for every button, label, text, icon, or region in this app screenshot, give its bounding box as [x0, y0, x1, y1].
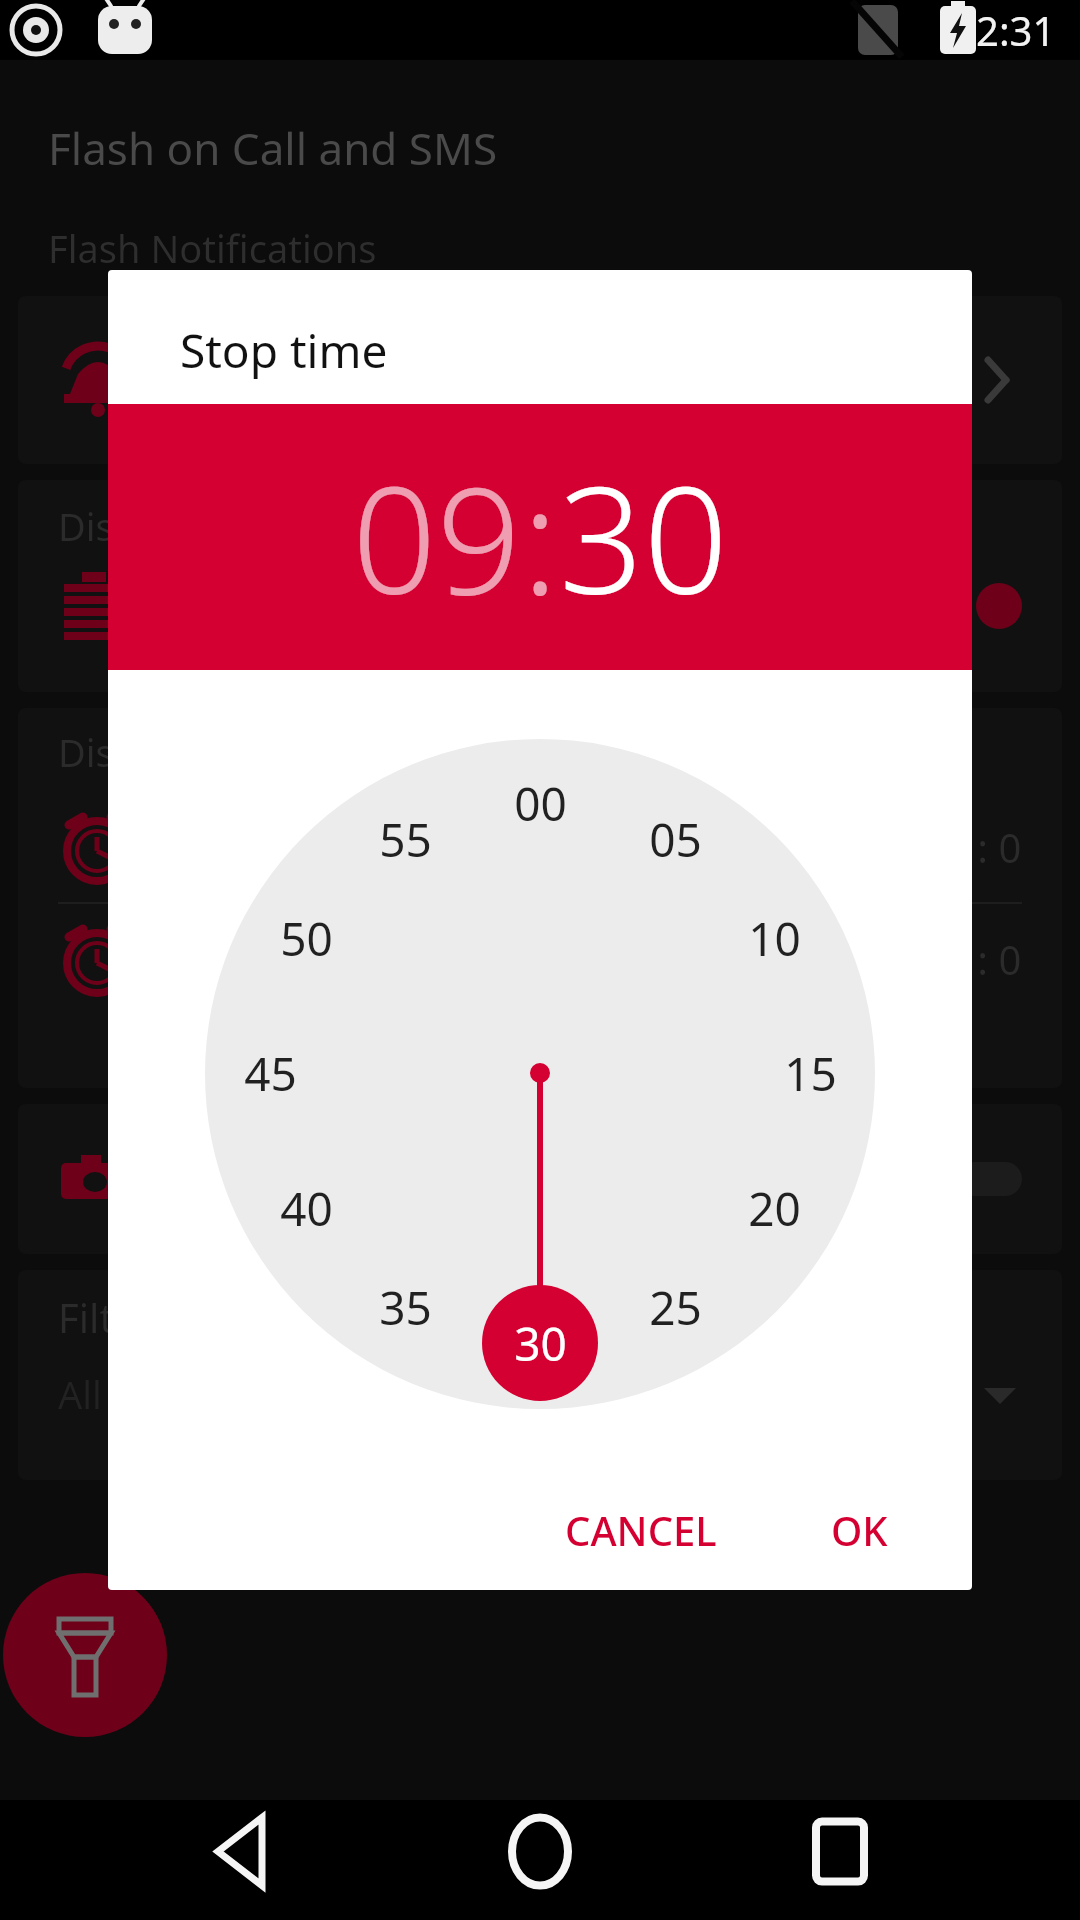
- staticText: OK: [831, 1503, 888, 1557]
- staticText: 0 : 0: [944, 820, 1022, 874]
- staticText: 50: [280, 907, 333, 970]
- staticText: 55: [379, 808, 432, 871]
- staticText: 0 : 0: [944, 932, 1022, 986]
- staticText: Disable when battery low: [58, 500, 509, 552]
- staticText: Filter: [58, 1290, 153, 1344]
- button[interactable]: [18, 1104, 1062, 1254]
- staticText: 40: [280, 1177, 333, 1240]
- staticText: 35: [379, 1276, 432, 1339]
- staticText: Flash Notifications: [48, 222, 377, 274]
- staticText: 00: [514, 772, 567, 835]
- staticText: 15: [784, 1042, 837, 1105]
- staticText: Disable during period: [58, 726, 446, 778]
- button[interactable]: Disable when battery low: [18, 480, 1062, 692]
- staticText: 25: [649, 1276, 702, 1339]
- button[interactable]: OK: [807, 1487, 912, 1573]
- staticText: Flash on Call and SMS: [48, 118, 498, 178]
- staticText: 05: [649, 808, 702, 871]
- button[interactable]: Filter: [18, 1270, 1062, 1480]
- staticText: 30: [514, 1312, 567, 1375]
- staticText: All: [58, 1368, 102, 1420]
- staticText: 30: [559, 436, 729, 638]
- button[interactable]: Toggle flashlight: [3, 1573, 167, 1737]
- button[interactable]: [18, 296, 1062, 464]
- button[interactable]: CANCEL: [541, 1487, 741, 1573]
- button[interactable]: Disable during period: [18, 708, 1062, 1088]
- staticText: 45: [244, 1042, 297, 1105]
- button[interactable]: Minute picker: [205, 739, 875, 1409]
- staticText: Stop time: [180, 319, 388, 382]
- staticText: 2:31: [976, 3, 1056, 57]
- staticText: 10: [748, 907, 801, 970]
- staticText: CANCEL: [565, 1503, 717, 1557]
- staticText: :: [522, 436, 559, 638]
- staticText: 09: [352, 436, 522, 638]
- staticText: 20: [748, 1177, 801, 1240]
